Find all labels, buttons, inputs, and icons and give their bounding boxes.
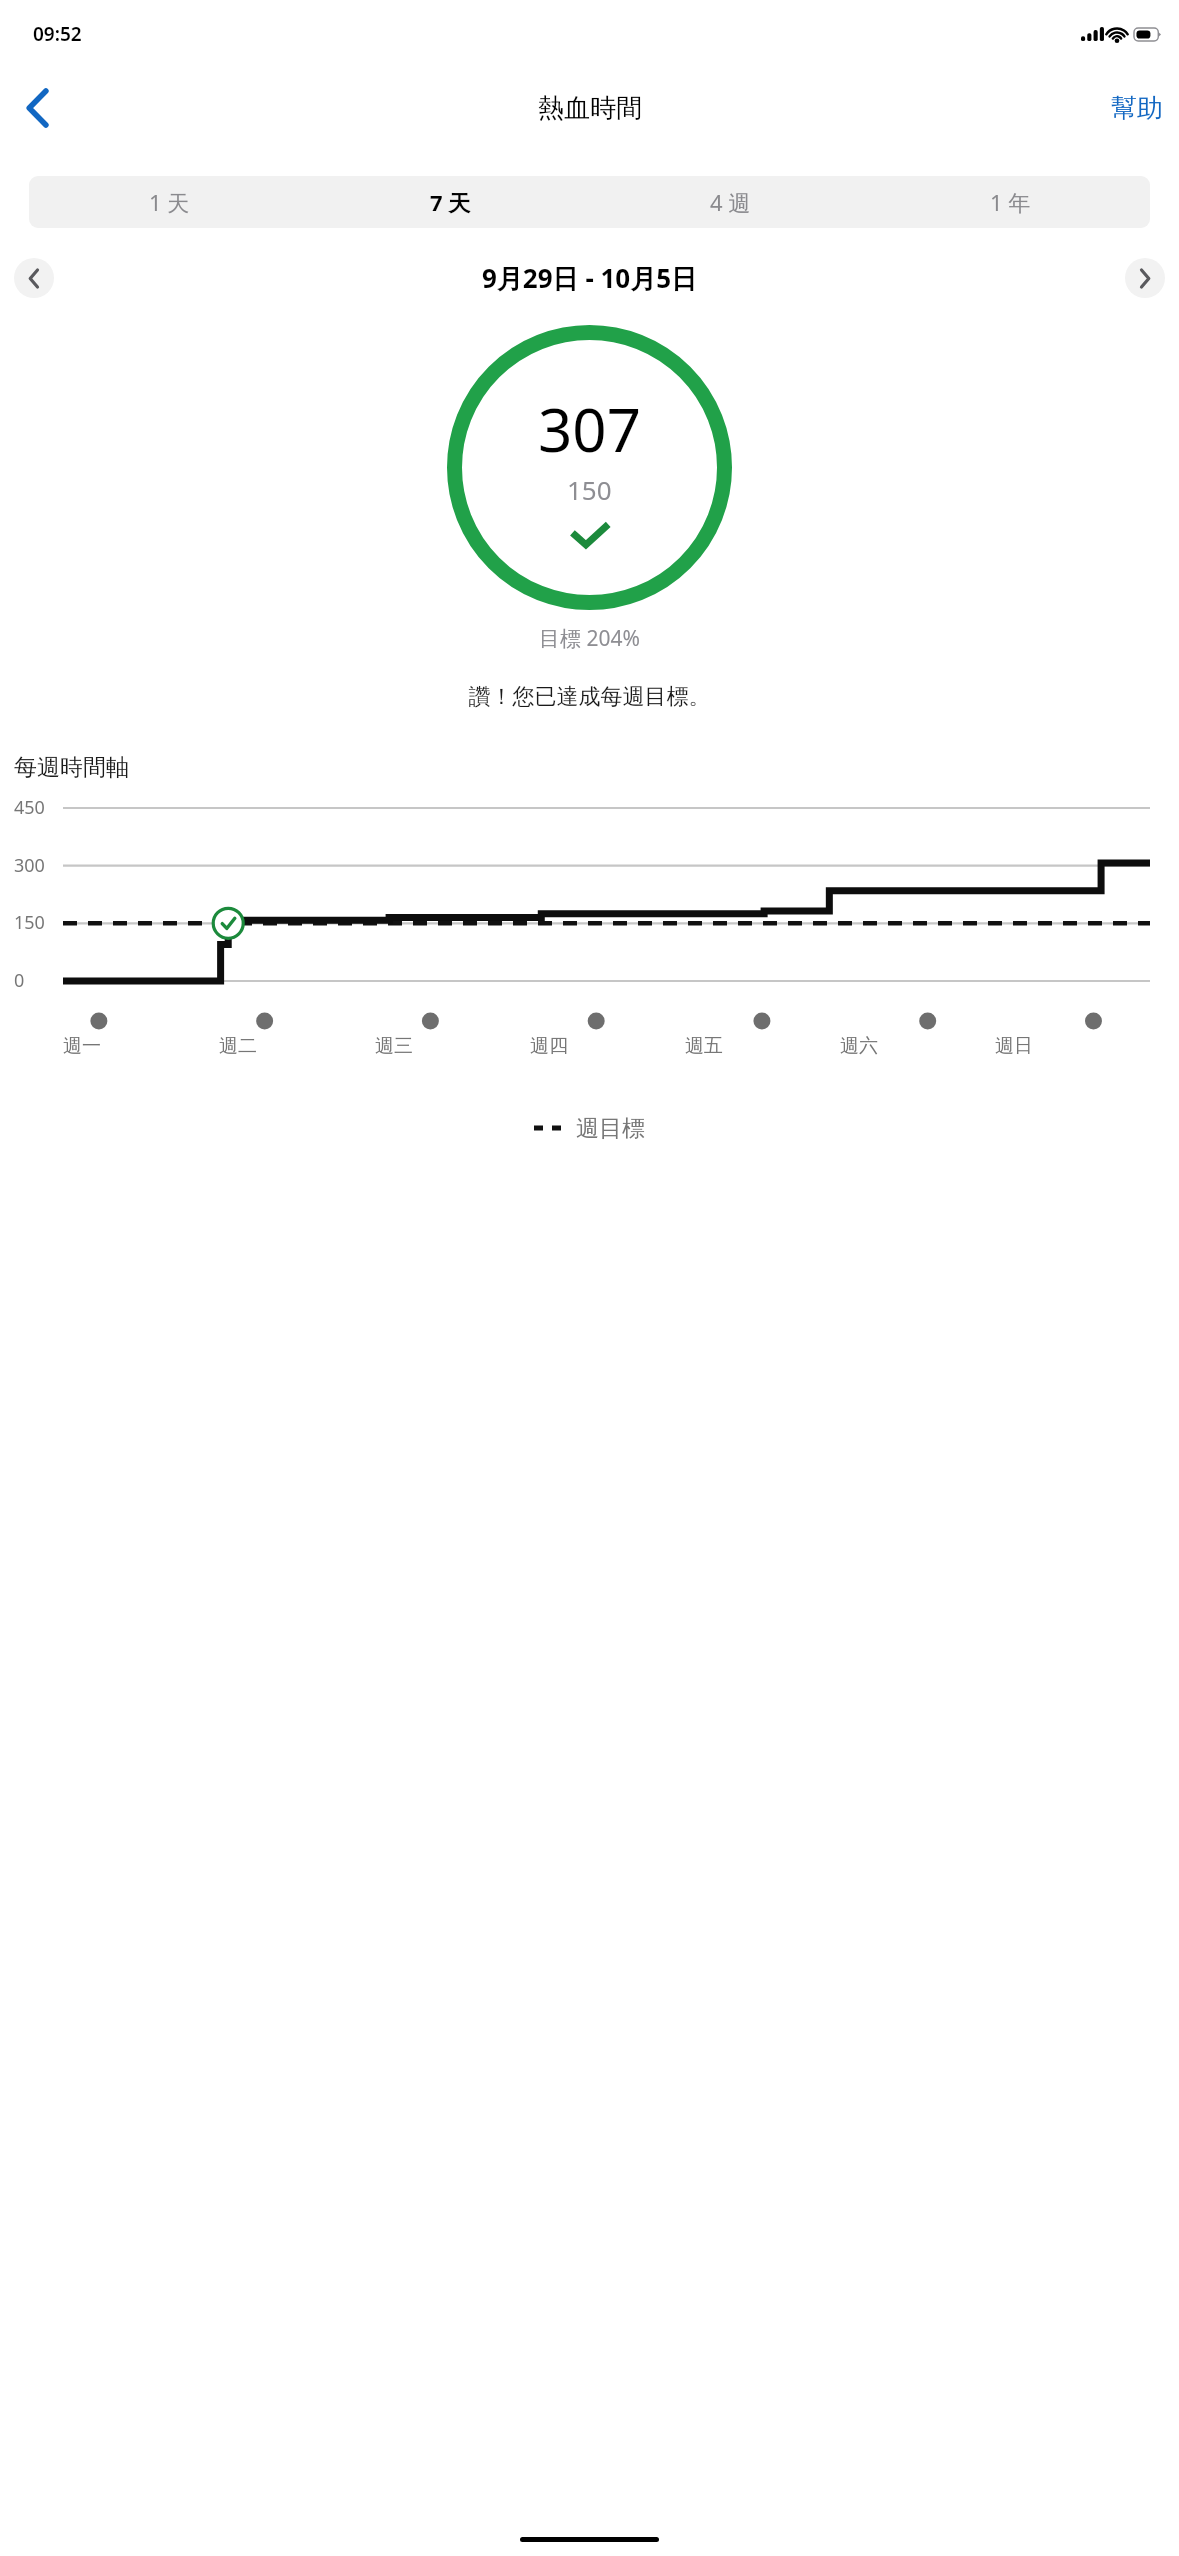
staticText: 4 週 xyxy=(710,187,751,217)
staticText: 每週時間軸 xyxy=(14,753,129,782)
staticText: 1 天 xyxy=(149,187,190,217)
staticText: 0 xyxy=(14,968,25,993)
staticText: 週日 xyxy=(995,1034,1033,1058)
button[interactable]: 1 年 xyxy=(870,176,1150,228)
staticText: 週五 xyxy=(685,1034,723,1058)
staticText: 7 天 xyxy=(430,187,471,217)
staticText: 週三 xyxy=(375,1034,413,1058)
staticText: 幫助 xyxy=(1111,92,1163,125)
button[interactable]: Back xyxy=(10,80,66,136)
staticText: 週二 xyxy=(219,1034,257,1058)
staticText: 1 年 xyxy=(990,187,1031,217)
staticText: 目標 204% xyxy=(0,624,1179,653)
button[interactable]: 7 天 xyxy=(310,176,590,228)
button[interactable]: Next week xyxy=(1125,258,1165,298)
staticText: 9月29日 - 10月5日 xyxy=(482,260,698,296)
staticText: 09:52 xyxy=(33,21,82,47)
staticText: 307 xyxy=(538,388,641,470)
staticText: 週四 xyxy=(530,1034,568,1058)
button[interactable]: Previous week xyxy=(14,258,54,298)
staticText: 300 xyxy=(14,853,45,878)
staticText: 週六 xyxy=(840,1034,878,1058)
staticText: 熱血時間 xyxy=(538,92,642,125)
staticText: 週一 xyxy=(63,1034,101,1058)
staticText: 週目標 xyxy=(576,1114,645,1143)
button[interactable]: 幫助 xyxy=(1111,92,1163,125)
button[interactable]: 1 天 xyxy=(29,176,310,228)
staticText: 150 xyxy=(14,910,45,935)
staticText: 150 xyxy=(567,472,612,507)
button[interactable]: 4 週 xyxy=(590,176,870,228)
staticText: 讚！您已達成每週目標。 xyxy=(0,683,1179,711)
staticText: 450 xyxy=(14,795,45,820)
